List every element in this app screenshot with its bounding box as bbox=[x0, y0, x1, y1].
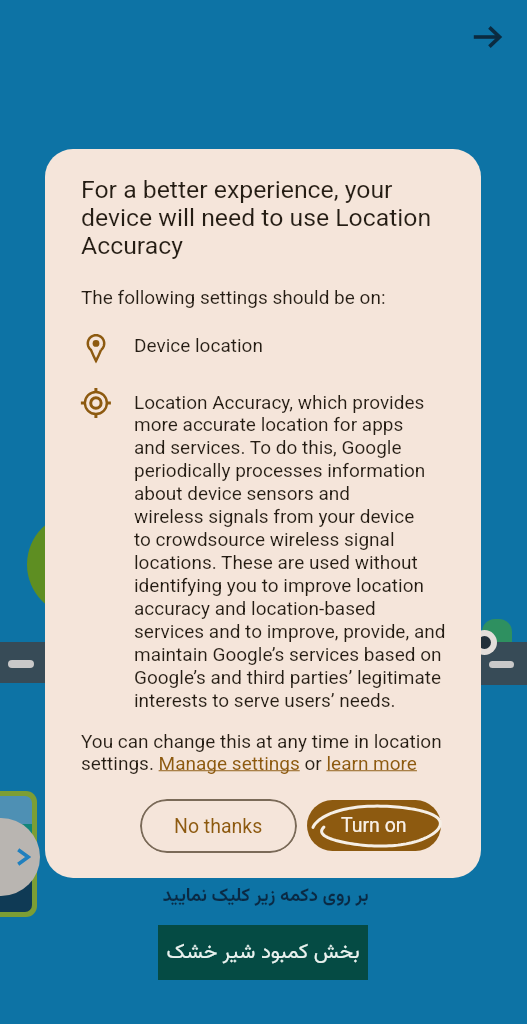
staticText: Turn on bbox=[341, 814, 407, 837]
staticText: Device location bbox=[134, 334, 263, 356]
button[interactable]: Next bbox=[463, 13, 511, 61]
staticText: For a better experience, your device wil… bbox=[81, 175, 432, 260]
staticText: بخش کمبود شیر خشک bbox=[166, 937, 360, 969]
staticText: بر روی دکمه زیر کلیک نمایید bbox=[162, 882, 369, 910]
button[interactable]: بخش کمبود شیر خشک bbox=[158, 925, 368, 980]
staticText: No thanks bbox=[174, 815, 263, 838]
button[interactable]: No thanks bbox=[140, 799, 297, 853]
button[interactable]: Turn on bbox=[307, 800, 441, 851]
button[interactable]: Next slide bbox=[0, 818, 40, 896]
staticText: The following settings should be on: bbox=[81, 286, 386, 308]
staticText: Location Accuracy, which provides more a… bbox=[134, 391, 446, 712]
staticText: You can change this at any time in locat… bbox=[81, 730, 442, 774]
